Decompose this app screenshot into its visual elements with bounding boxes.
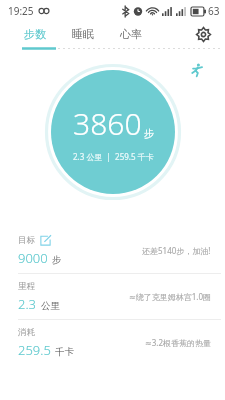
- button[interactable]: 编辑目标: [40, 235, 51, 246]
- button[interactable]: 目标: [0, 228, 225, 273]
- staticText: 还差5140步，加油!: [142, 245, 211, 256]
- staticText: 步: [52, 254, 62, 266]
- button[interactable]: 步数: [22, 24, 48, 44]
- button[interactable]: 心率: [118, 24, 144, 44]
- button[interactable]: 运动: [187, 60, 207, 80]
- staticText: 睡眠: [72, 27, 94, 41]
- staticText: 步数: [24, 27, 46, 41]
- staticText: 消耗: [18, 327, 35, 338]
- button[interactable]: 睡眠: [70, 24, 96, 44]
- staticText: 里程: [18, 281, 35, 292]
- staticText: 公里: [41, 300, 60, 312]
- button[interactable]: 里程: [0, 274, 225, 319]
- staticText: 步: [144, 127, 154, 140]
- staticText: 63: [208, 4, 220, 18]
- staticText: ≈绕了克里姆林宫1.0圈: [129, 291, 211, 302]
- staticText: 2.3: [18, 295, 37, 313]
- button[interactable]: 消耗: [0, 320, 225, 365]
- button[interactable]: 设置: [191, 22, 215, 46]
- staticText: 19:25: [8, 4, 34, 18]
- staticText: 目标: [18, 235, 35, 246]
- staticText: 2.3 公里 | 259.5 千卡: [73, 151, 154, 162]
- staticText: 259.5: [18, 341, 51, 359]
- button[interactable]: 3860: [44, 63, 182, 201]
- staticText: 9000: [18, 249, 48, 267]
- staticText: 心率: [120, 27, 142, 41]
- staticText: 千卡: [55, 346, 74, 358]
- staticText: 3860: [73, 103, 142, 144]
- staticText: ≈3.2根香蕉的热量: [145, 337, 211, 348]
